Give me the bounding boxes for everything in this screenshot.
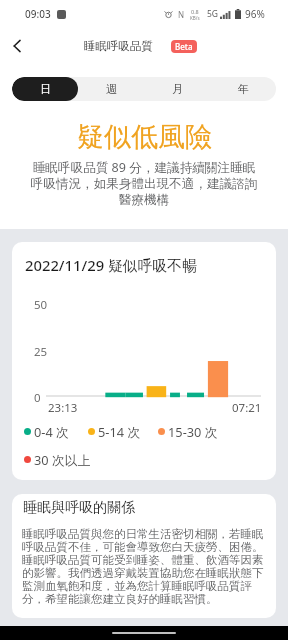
staticText: 0-4 次 (34, 423, 69, 440)
button[interactable]: 週 (78, 77, 144, 101)
staticText: 23:13 (48, 400, 78, 416)
staticText: 0 (34, 390, 41, 406)
staticText: N (178, 9, 185, 20)
staticText: 日 (40, 82, 51, 96)
staticText: 0.8 (191, 8, 199, 15)
staticText: 疑似低風險 (77, 120, 212, 154)
staticText: 96% (245, 7, 265, 21)
staticText: Beta (175, 41, 193, 52)
staticText: 睡眠與呼吸的關係 (23, 499, 135, 517)
button[interactable]: 年 (210, 77, 276, 101)
staticText: 年 (238, 82, 249, 96)
button[interactable]: Back (2, 31, 32, 61)
staticText: 2022/11/29 疑似呼吸不暢 (25, 255, 197, 275)
button[interactable]: 日 (12, 77, 78, 101)
staticText: 50 (34, 297, 48, 313)
staticText: 週 (106, 82, 117, 96)
staticText: 睡眠呼吸品質 (84, 39, 153, 53)
staticText: 5G (207, 8, 219, 20)
button[interactable]: 月 (144, 77, 210, 101)
staticText: 5-14 次 (98, 423, 141, 440)
staticText: 09:03 (25, 7, 51, 21)
staticText: KB/s (190, 15, 200, 21)
staticText: 15-30 次 (168, 423, 218, 440)
staticText: 07:21 (232, 400, 262, 416)
staticText: 睡眠呼吸品質 89 分，建議持續關注睡眠呼吸情況，如果身體出現不適，建議諮詢醫療… (30, 159, 258, 207)
staticText: 30 次以上 (34, 451, 91, 468)
staticText: 睡眠呼吸品質與您的日常生活密切相關，若睡眠呼吸品質不佳，可能會導致您白天疲勞、困… (22, 527, 267, 606)
staticText: 月 (172, 82, 183, 96)
staticText: 25 (34, 344, 48, 360)
